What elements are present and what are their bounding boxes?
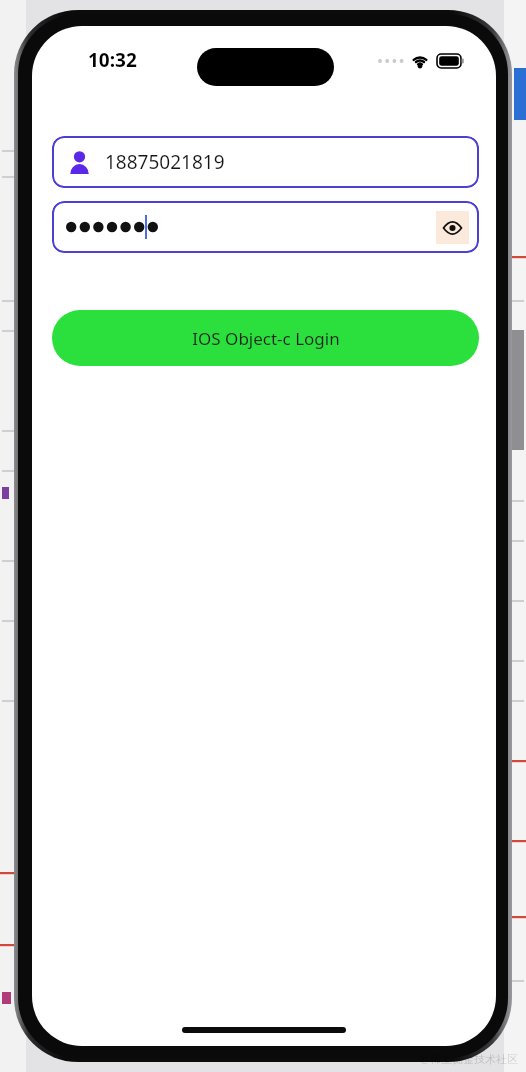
staticText: 10:32 <box>88 47 137 73</box>
staticText: @稀土掘金技术社区 <box>420 1051 518 1066</box>
button[interactable]: IOS Object-c Login <box>52 310 479 366</box>
button[interactable]: Show password <box>52 201 479 253</box>
staticText: IOS Object-c Login <box>192 327 340 350</box>
staticText: 18875021819 <box>105 149 225 175</box>
button[interactable]: Show password <box>436 211 469 244</box>
button[interactable]: 18875021819 <box>52 136 479 188</box>
